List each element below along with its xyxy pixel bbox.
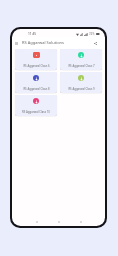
button[interactable]: Open navigation menu [12, 39, 21, 48]
button[interactable]: RS Aggarwal Class 7 [60, 49, 102, 70]
button[interactable]: System navigation button [56, 219, 61, 224]
button[interactable]: RS Aggarwal Class 6 [15, 49, 57, 70]
staticText: RS Aggarwal Class 10 [22, 110, 50, 114]
button[interactable]: Share [91, 39, 100, 48]
button[interactable]: RS Aggarwal Class 10 [15, 95, 57, 116]
staticText: RS Aggarwal Class 6 [23, 64, 50, 68]
staticText: 11:45 [28, 32, 37, 36]
button[interactable]: System navigation button [78, 219, 83, 224]
staticText: 74% [89, 32, 95, 36]
staticText: RS Aggarwal Class 9 [68, 87, 95, 91]
button[interactable]: System navigation button [34, 219, 39, 224]
button[interactable]: RS Aggarwal Class 8 [15, 72, 57, 93]
staticText: RS Aggarwal Class 7 [68, 64, 95, 68]
staticText: RS Aggarwal Solutions [22, 40, 64, 45]
button[interactable]: RS Aggarwal Class 9 [60, 72, 102, 93]
staticText: RS Aggarwal Class 8 [23, 87, 50, 91]
